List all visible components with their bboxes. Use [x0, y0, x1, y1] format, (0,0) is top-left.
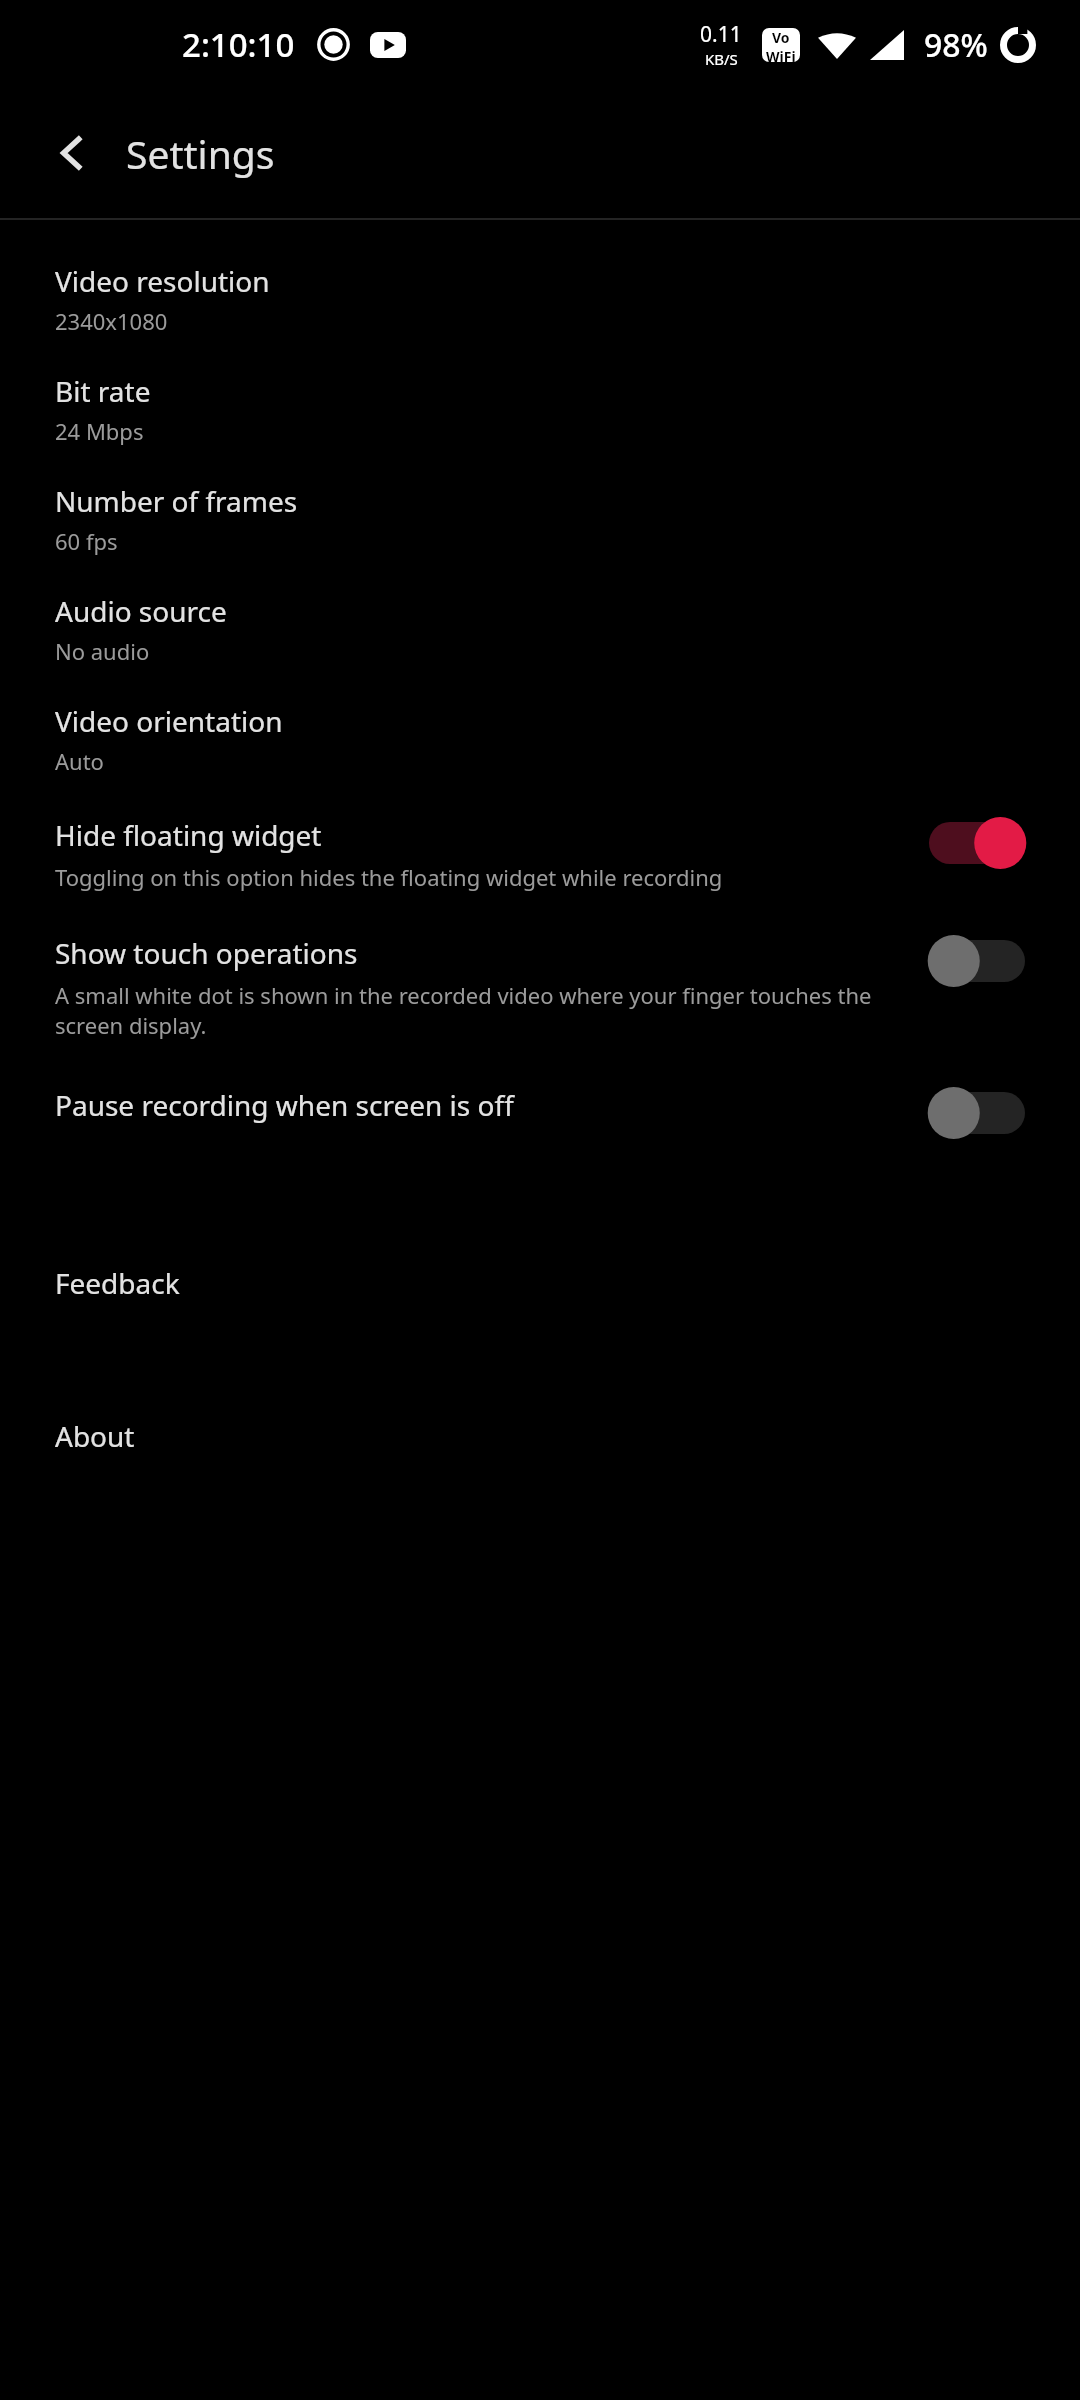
staticText: Hide floating widget — [55, 816, 322, 854]
button[interactable]: Show touch operations — [0, 934, 1080, 1040]
button[interactable]: Number of frames — [0, 482, 1080, 556]
button[interactable]: Pause recording when screen is off — [0, 1086, 1080, 1134]
button[interactable]: About — [0, 1417, 1080, 1455]
button[interactable]: Video orientation — [0, 702, 1080, 776]
staticText: Show touch operations — [55, 934, 358, 972]
staticText: Settings — [126, 127, 275, 180]
button[interactable]: Off — [929, 940, 1025, 982]
staticText: 2:10:10 — [182, 22, 295, 67]
button[interactable]: Hide floating widget — [0, 816, 1080, 892]
staticText: Vo — [772, 28, 790, 47]
staticText: About — [55, 1417, 135, 1455]
staticText: 2340x1080 — [55, 306, 168, 336]
button[interactable]: On — [929, 822, 1025, 864]
button[interactable]: Feedback — [0, 1264, 1080, 1302]
button[interactable]: Bit rate — [0, 372, 1080, 446]
button[interactable]: Back — [26, 107, 118, 199]
staticText: Audio source — [55, 592, 227, 630]
staticText: Toggling on this option hides the floati… — [55, 862, 723, 892]
staticText: KB/S — [705, 49, 738, 69]
staticText: Video orientation — [55, 702, 283, 740]
staticText: Auto — [55, 746, 104, 776]
staticText: 98% — [924, 23, 988, 67]
staticText: No audio — [55, 636, 150, 666]
staticText: 24 Mbps — [55, 416, 144, 446]
staticText: 0.11 — [700, 20, 742, 49]
staticText: Pause recording when screen is off — [55, 1086, 514, 1124]
staticText: 60 fps — [55, 526, 118, 556]
button[interactable]: Audio source — [0, 592, 1080, 666]
button[interactable]: Video resolution — [0, 262, 1080, 336]
staticText: Bit rate — [55, 372, 151, 410]
staticText: Video resolution — [55, 262, 270, 300]
staticText: Number of frames — [55, 482, 298, 520]
button[interactable]: Off — [929, 1092, 1025, 1134]
staticText: WiFi — [766, 47, 796, 62]
staticText: A small white dot is shown in the record… — [55, 980, 899, 1040]
staticText: Feedback — [55, 1264, 180, 1302]
